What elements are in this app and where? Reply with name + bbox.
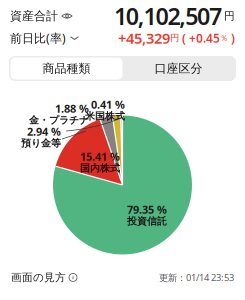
button[interactable]: Hide balance	[58, 9, 72, 22]
staticText: 0.41 %	[91, 97, 125, 112]
staticText: 口座区分	[154, 61, 202, 76]
staticText: +45,329	[118, 28, 170, 48]
button[interactable]: Change metric	[66, 31, 79, 44]
staticText: 更新：01/14 23:53	[159, 271, 234, 284]
staticText: 10,102,507	[114, 0, 222, 32]
staticText: 資産合計	[10, 9, 58, 23]
staticText: 商品種類	[42, 61, 90, 76]
staticText: )	[228, 30, 235, 46]
staticText: 79.35 %	[127, 202, 167, 217]
staticText: 国内株式	[80, 162, 120, 174]
staticText: 投資信託	[127, 215, 167, 227]
staticText: 米国株式	[85, 110, 125, 122]
staticText: 円	[224, 9, 235, 22]
staticText: 金・プラチナ	[29, 114, 89, 126]
staticText: 1.88 %	[55, 101, 89, 116]
staticText: 15.41 %	[80, 149, 120, 164]
staticText: 預り金等	[21, 137, 61, 149]
button[interactable]: 商品種類	[10, 57, 122, 79]
staticText: ( +0.45	[179, 30, 220, 46]
staticText: 円	[170, 32, 179, 44]
button[interactable]: 口座区分	[122, 57, 234, 79]
staticText: 画面の見方	[11, 271, 66, 284]
button[interactable]: 画面の見方	[11, 268, 77, 287]
staticText: ％	[220, 33, 228, 43]
staticText: 2.94 %	[27, 124, 61, 139]
staticText: 前日比(率)	[10, 30, 66, 46]
